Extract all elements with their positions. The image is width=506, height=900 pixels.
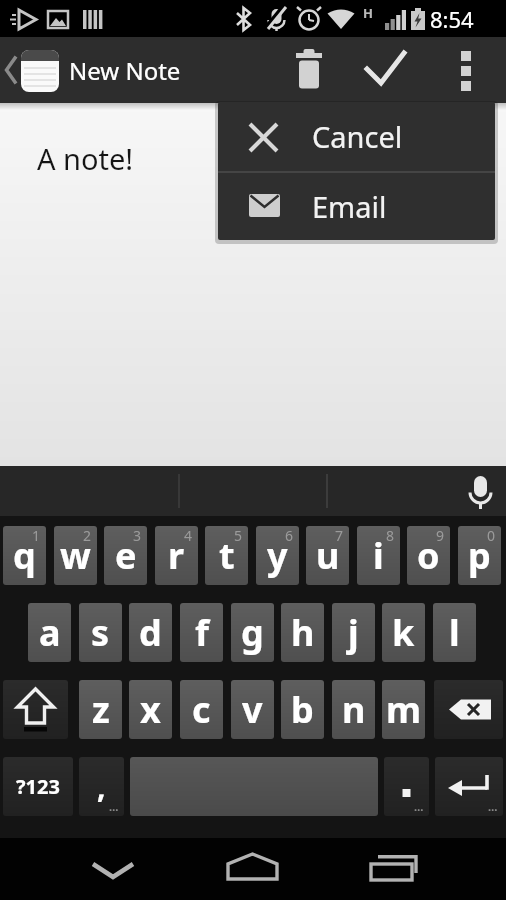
staticText: c xyxy=(192,685,211,734)
staticText: Cancel xyxy=(312,117,403,156)
staticText: x xyxy=(140,685,161,734)
button[interactable] xyxy=(3,680,68,739)
staticText: s xyxy=(91,608,110,657)
button[interactable]: e xyxy=(104,526,147,585)
button[interactable]: , xyxy=(79,757,124,816)
staticText: u xyxy=(316,531,340,580)
staticText: 3 xyxy=(133,526,142,545)
staticText: n xyxy=(342,685,366,734)
button[interactable]: … xyxy=(384,757,429,816)
staticText: H xyxy=(363,4,373,22)
button[interactable] xyxy=(442,37,490,103)
staticText: t xyxy=(219,531,235,580)
button[interactable]: x xyxy=(129,680,172,739)
button[interactable]: i xyxy=(357,526,400,585)
staticText: i xyxy=(373,531,384,580)
button[interactable] xyxy=(285,37,333,103)
staticText: 9 xyxy=(436,526,445,545)
staticText: A note! xyxy=(37,139,134,178)
button[interactable]: Email xyxy=(218,172,495,240)
staticText: 4 xyxy=(184,526,193,545)
staticText: 8 xyxy=(386,526,395,545)
button[interactable]: f xyxy=(180,603,223,662)
button[interactable] xyxy=(213,838,293,900)
button[interactable]: r xyxy=(155,526,198,585)
staticText: b xyxy=(291,685,314,734)
button[interactable] xyxy=(73,838,153,900)
staticText: j xyxy=(348,608,359,657)
button[interactable]: Cancel xyxy=(218,102,495,171)
staticText: 7 xyxy=(335,526,344,545)
staticText: New Note xyxy=(69,54,181,87)
staticText: o xyxy=(417,531,440,580)
staticText: a xyxy=(39,608,61,657)
staticText: 2 xyxy=(83,526,92,545)
staticText: 0 xyxy=(487,526,496,545)
staticText: 8:54 xyxy=(430,4,474,34)
button[interactable]: l xyxy=(433,603,476,662)
button[interactable] xyxy=(360,37,408,103)
button[interactable]: ?123 xyxy=(3,757,73,816)
button[interactable]: … xyxy=(435,757,503,816)
staticText: w xyxy=(60,531,91,580)
button[interactable]: m xyxy=(382,680,425,739)
staticText: g xyxy=(241,608,264,657)
button[interactable]: n xyxy=(332,680,375,739)
staticText: f xyxy=(195,608,209,657)
staticText: q xyxy=(13,531,36,580)
button[interactable]: d xyxy=(129,603,172,662)
staticText: k xyxy=(392,608,415,657)
staticText: Email xyxy=(312,187,387,226)
staticText: h xyxy=(291,608,315,657)
button[interactable] xyxy=(455,466,506,516)
staticText: 6 xyxy=(285,526,294,545)
button[interactable]: z xyxy=(79,680,122,739)
button[interactable] xyxy=(434,680,503,739)
button[interactable]: c xyxy=(180,680,223,739)
button[interactable]: t xyxy=(205,526,248,585)
staticText: v xyxy=(242,685,263,734)
staticText: 1 xyxy=(32,526,41,545)
staticText: … xyxy=(488,799,498,814)
staticText: ?123 xyxy=(16,773,60,800)
button[interactable]: b xyxy=(281,680,324,739)
button[interactable]: j xyxy=(332,603,375,662)
button[interactable]: u xyxy=(306,526,349,585)
staticText: z xyxy=(92,685,110,734)
button[interactable]: p xyxy=(458,526,501,585)
staticText: r xyxy=(168,531,185,580)
staticText: l xyxy=(449,608,460,657)
button[interactable] xyxy=(0,37,64,103)
button[interactable]: g xyxy=(231,603,274,662)
staticText: e xyxy=(115,531,137,580)
staticText: y xyxy=(267,531,288,580)
button[interactable]: k xyxy=(382,603,425,662)
button[interactable]: o xyxy=(407,526,450,585)
button[interactable]: w xyxy=(54,526,97,585)
button[interactable] xyxy=(130,757,378,816)
button[interactable]: s xyxy=(79,603,122,662)
button[interactable]: v xyxy=(231,680,274,739)
button[interactable]: h xyxy=(281,603,324,662)
staticText: d xyxy=(139,608,162,657)
button[interactable]: a xyxy=(28,603,71,662)
staticText: p xyxy=(468,531,491,580)
button[interactable] xyxy=(352,838,432,900)
staticText: … xyxy=(414,799,424,814)
staticText: , xyxy=(97,766,106,807)
staticText: 5 xyxy=(234,526,243,545)
button[interactable]: q xyxy=(3,526,46,585)
staticText: … xyxy=(109,799,119,814)
staticText: m xyxy=(386,685,422,734)
button[interactable]: y xyxy=(256,526,299,585)
